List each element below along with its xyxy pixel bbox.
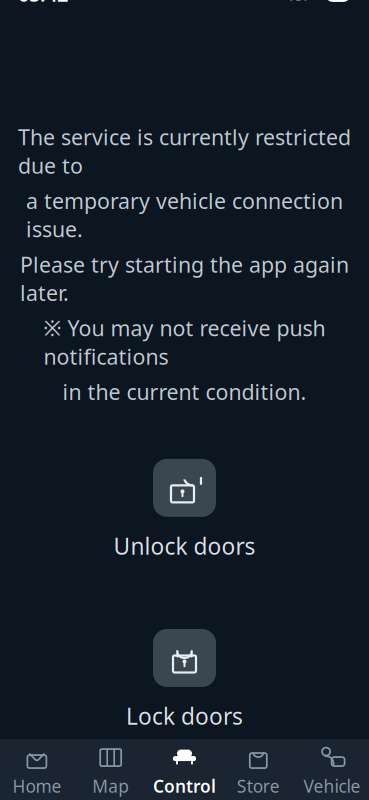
button[interactable]: Vehicle — [295, 738, 369, 800]
button[interactable]: Control — [148, 738, 221, 800]
staticText: ※ You may not receive push notifications — [43, 314, 325, 371]
staticText: a temporary vehicle connection issue. — [26, 187, 343, 243]
button[interactable]: Home — [0, 738, 74, 800]
staticText: Lock doors — [126, 701, 243, 731]
staticText: in the current condition. — [62, 378, 306, 406]
staticText: Vehicle — [304, 775, 361, 798]
staticText: Map — [92, 775, 129, 798]
button[interactable]: Store — [221, 738, 295, 800]
button[interactable]: Lock doors — [126, 629, 243, 731]
staticText: Control — [153, 775, 216, 798]
button[interactable]: Unlock doors — [113, 459, 255, 561]
staticText: 84 — [330, 0, 346, 4]
staticText: Please try starting the app again later. — [20, 250, 349, 307]
staticText: Home — [12, 775, 61, 798]
staticText: Store — [237, 775, 280, 798]
staticText: The service is currently restricted due … — [18, 123, 351, 180]
staticText: 05:42 — [18, 0, 68, 7]
staticText: Unlock doors — [113, 531, 255, 561]
button[interactable]: Map — [74, 738, 148, 800]
